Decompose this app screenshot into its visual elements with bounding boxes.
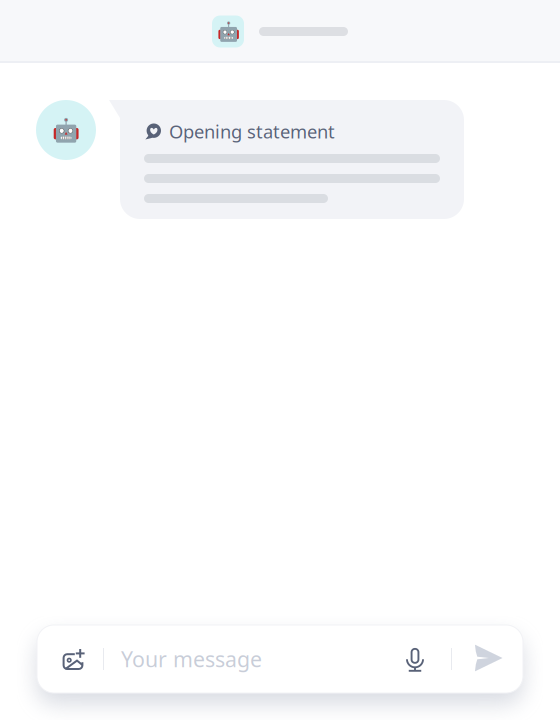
staticText: Your message	[121, 645, 262, 673]
button[interactable]: Your message	[121, 635, 381, 683]
staticText: 🤖	[216, 21, 239, 42]
button[interactable]: Add photo	[51, 637, 95, 681]
staticText: 🤖	[52, 117, 80, 143]
button[interactable]: Send	[466, 636, 510, 680]
staticText: Opening statement	[169, 119, 335, 144]
button[interactable]: Assistant	[212, 15, 244, 47]
button[interactable]: Voice input	[393, 638, 437, 682]
